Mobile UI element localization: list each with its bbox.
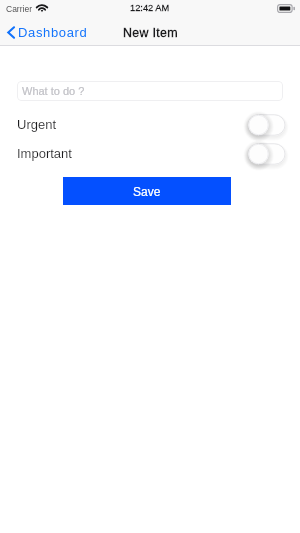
staticText: Dashboard: [18, 25, 88, 40]
staticText: Carrier: [6, 4, 32, 13]
staticText: What to do ?: [22, 85, 85, 97]
button[interactable]: Dashboard: [0, 23, 98, 42]
staticText: Urgent: [17, 117, 57, 132]
button[interactable]: Toggle: [248, 143, 286, 165]
staticText: Important: [17, 146, 72, 161]
staticText: 12:42 AM: [130, 3, 170, 13]
button[interactable]: What to do ?: [17, 81, 283, 101]
button[interactable]: Toggle: [248, 114, 286, 136]
staticText: Save: [133, 185, 161, 198]
button[interactable]: Save: [63, 177, 231, 205]
staticText: New Item: [123, 26, 178, 40]
